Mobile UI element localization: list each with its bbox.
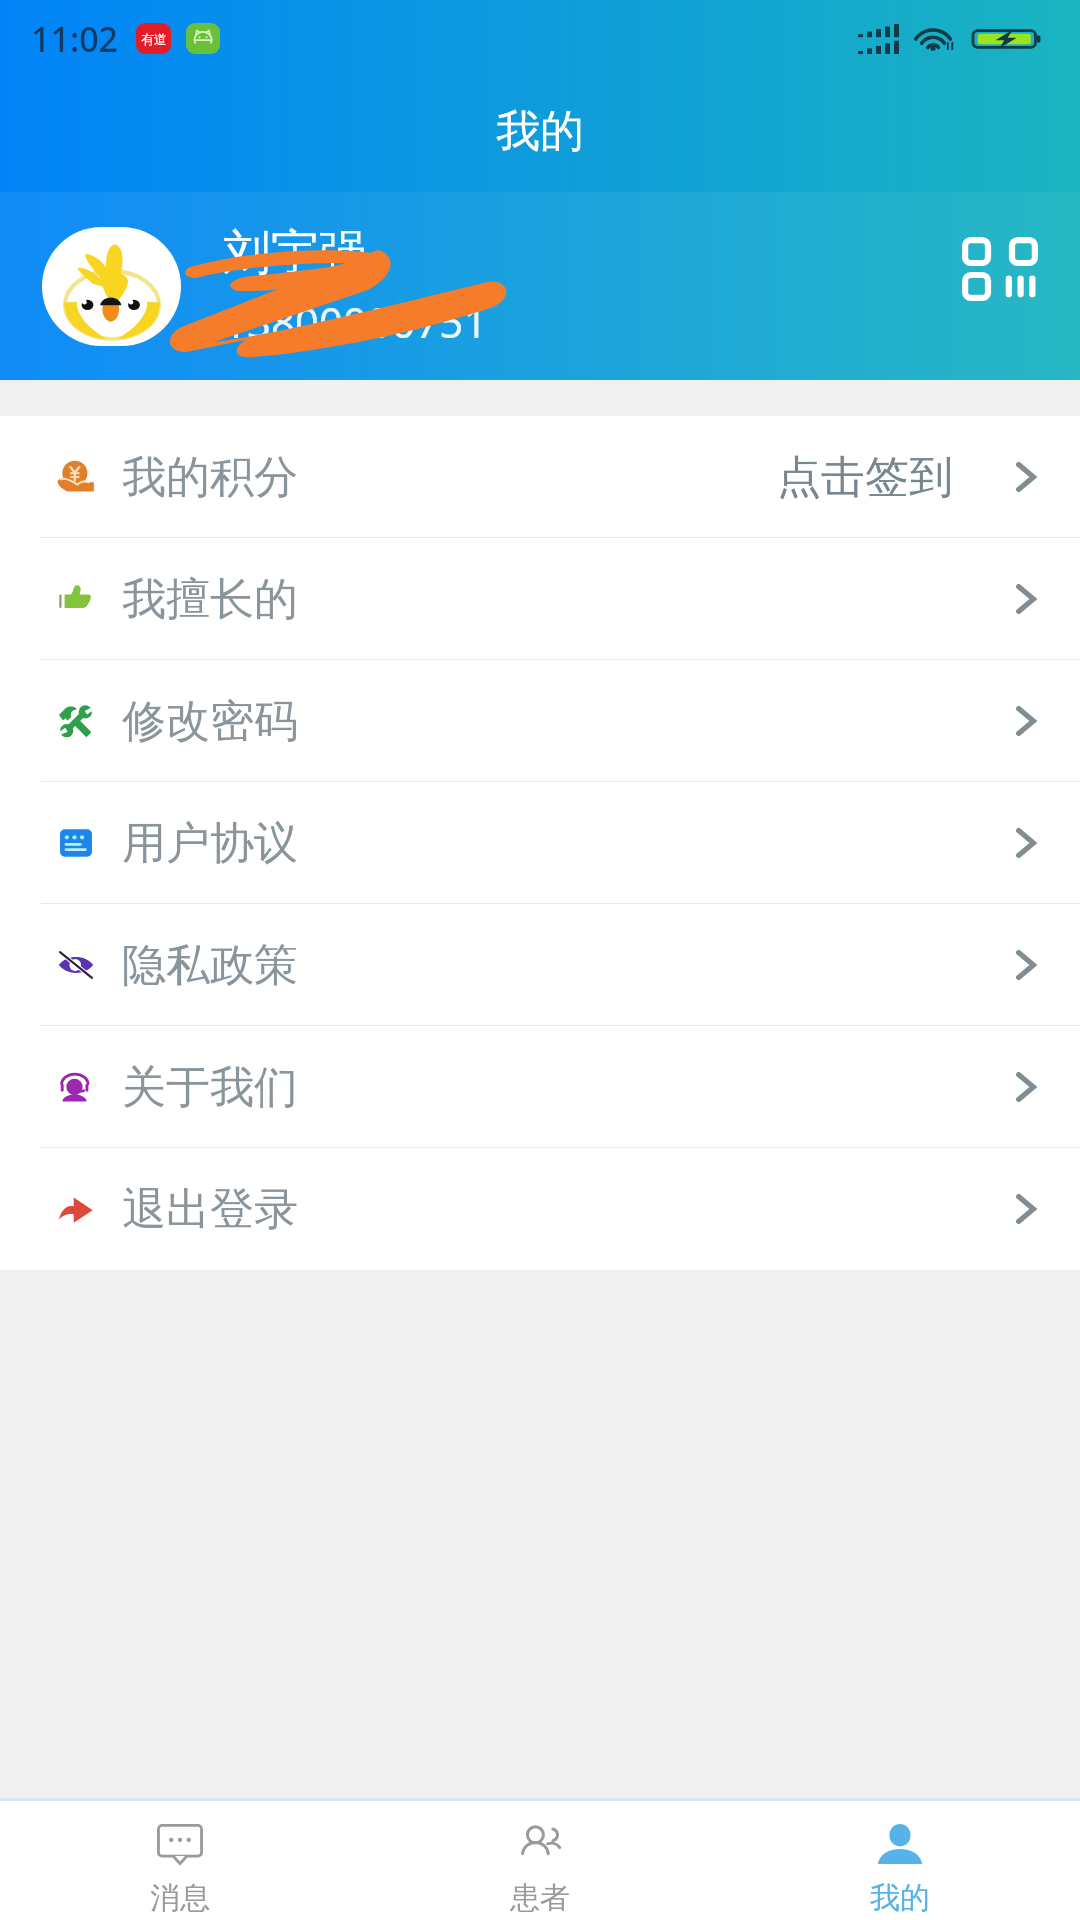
staticText: 我的 [870,1879,930,1917]
button[interactable]: 退出登录 [0,1148,1080,1270]
button[interactable]: 关于我们 [0,1026,1080,1148]
staticText: 我擅长的 [122,572,298,627]
button[interactable]: 消息 [0,1801,360,1920]
staticText: 11:02 [31,16,119,62]
button[interactable]: 用户协议 [0,782,1080,904]
button[interactable]: 我擅长的 [0,538,1080,660]
staticText: 我的 [496,104,584,159]
staticText: 有道 [141,31,167,47]
staticText: 13800000751 [223,293,488,350]
button[interactable]: Avatar [42,227,181,346]
button[interactable]: 我的积分 [0,416,1080,538]
button[interactable]: 修改密码 [0,660,1080,782]
button[interactable]: 我的 [720,1801,1080,1920]
staticText: 点击签到 [777,450,953,505]
button[interactable]: 隐私政策 [0,904,1080,1026]
staticText: 关于我们 [122,1060,298,1115]
staticText: 修改密码 [122,694,298,749]
staticText: 用户协议 [122,816,298,871]
staticText: 患者 [510,1879,570,1917]
button[interactable]: QR code [955,224,1045,314]
staticText: 退出登录 [122,1182,298,1237]
staticText: 我的积分 [122,450,298,505]
staticText: 刘宇强 [223,223,367,283]
staticText: 消息 [150,1879,210,1917]
button[interactable]: 患者 [360,1801,720,1920]
staticText: 隐私政策 [122,938,298,993]
